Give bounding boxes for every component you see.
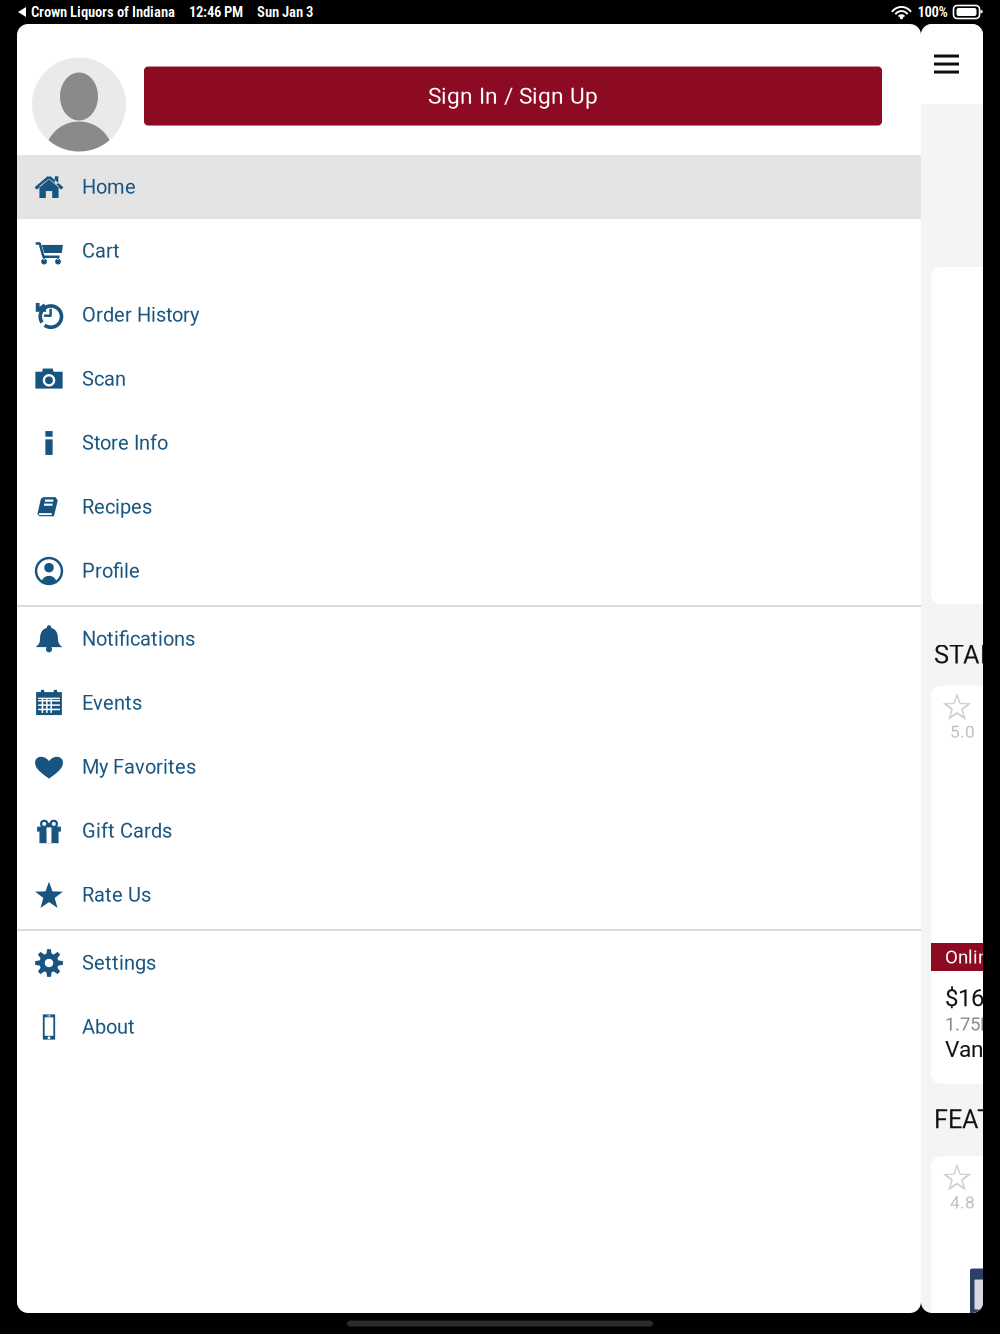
staticText: Rate Us — [82, 883, 151, 907]
button[interactable]: Menu — [921, 24, 983, 104]
staticText: Gift Cards — [82, 819, 172, 843]
staticText: $16.99 — [945, 984, 1000, 1012]
staticText: Cart — [82, 239, 120, 263]
staticText: Settings — [82, 951, 156, 975]
button[interactable]: Crown Liquors of Indiana — [0, 3, 175, 21]
button[interactable]: Store Info — [17, 411, 921, 475]
staticText: Crown Liquors of Indiana — [31, 3, 175, 21]
button[interactable]: Recipes — [17, 475, 921, 539]
button[interactable]: My Favorites — [17, 735, 921, 799]
staticText: 5.0 — [950, 722, 975, 742]
staticText: 100% — [917, 3, 947, 21]
staticText: 12:46 PM — [189, 3, 243, 21]
staticText: FEATURED — [934, 1105, 1000, 1134]
staticText: About — [82, 1015, 135, 1039]
button[interactable]: About — [17, 995, 921, 1059]
staticText: Scan — [82, 367, 126, 391]
staticText: Recipes — [82, 495, 152, 519]
button[interactable]: Gift Cards — [17, 799, 921, 863]
staticText: Notifications — [82, 627, 195, 651]
staticText: Sign In / Sign Up — [428, 83, 598, 109]
button[interactable]: Notifications — [17, 607, 921, 671]
staticText: 1.75L — [945, 1013, 990, 1035]
button[interactable]: Sign In / Sign Up — [144, 66, 882, 125]
staticText: Store Info — [82, 431, 168, 455]
staticText: Sun Jan 3 — [257, 3, 313, 21]
staticText: Profile — [82, 559, 140, 583]
staticText: My Favorites — [82, 755, 196, 779]
button[interactable]: Scan — [17, 347, 921, 411]
button[interactable]: Rate Us — [17, 863, 921, 927]
staticText: Home — [82, 175, 136, 199]
staticText: Online Only — [945, 946, 1000, 968]
button[interactable]: Profile — [17, 539, 921, 603]
button[interactable]: Home — [17, 155, 921, 219]
staticText: Order History — [82, 303, 199, 327]
button[interactable]: Events — [17, 671, 921, 735]
button[interactable]: Order History — [17, 283, 921, 347]
staticText: Events — [82, 691, 142, 715]
staticText: STAR PRODUCTS — [934, 640, 1000, 670]
staticText: 4.8 — [950, 1192, 975, 1213]
button[interactable]: Cart — [17, 219, 921, 283]
staticText: Vanja Vodka — [945, 1036, 1000, 1063]
button[interactable]: Settings — [17, 931, 921, 995]
